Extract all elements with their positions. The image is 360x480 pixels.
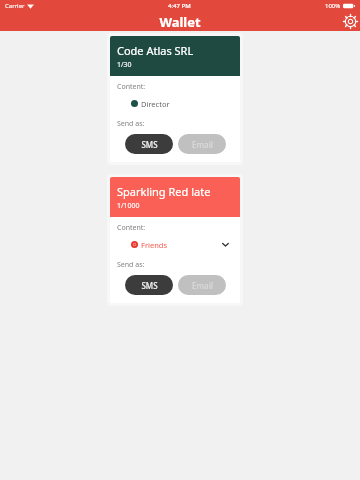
staticText: Code Atlas SRL	[117, 43, 194, 58]
staticText: Email	[192, 280, 213, 291]
staticText: Carrier	[5, 2, 25, 10]
staticText: Send as:	[117, 119, 145, 129]
staticText: Content:	[117, 82, 146, 92]
button[interactable]: Friends	[127, 237, 233, 252]
staticText: Content:	[117, 223, 146, 233]
button[interactable]: Email	[178, 275, 226, 295]
button[interactable]: Director	[127, 96, 233, 111]
button[interactable]: Sparkling Red late 2014	[107, 174, 243, 306]
staticText: Director	[141, 99, 170, 109]
staticText: 1/30	[117, 60, 132, 70]
staticText: SMS	[141, 139, 158, 150]
staticText: Sparkling Red late 2014	[117, 184, 233, 199]
staticText: 4:47 PM	[168, 2, 191, 10]
staticText: Wallet	[159, 13, 201, 31]
button[interactable]: SMS	[125, 275, 173, 295]
button[interactable]: Code Atlas SRL	[107, 33, 243, 165]
button[interactable]: SMS	[125, 134, 173, 154]
staticText: 100%	[325, 2, 341, 10]
staticText: Send as:	[117, 260, 145, 270]
staticText: Friends	[141, 240, 167, 250]
staticText: 1/1000	[117, 201, 140, 211]
button[interactable]: Settings	[341, 12, 360, 31]
button[interactable]: Email	[178, 134, 226, 154]
staticText: SMS	[141, 280, 158, 291]
staticText: Email	[192, 139, 213, 150]
